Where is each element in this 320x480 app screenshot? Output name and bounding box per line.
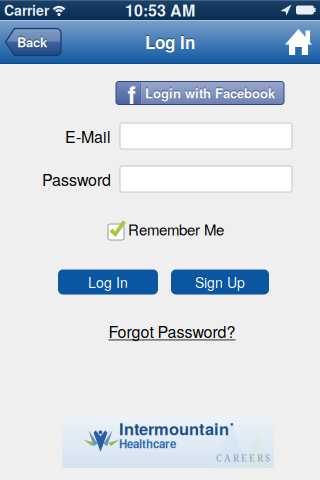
staticText: Back [17,33,47,51]
staticText: Carrier [4,0,49,20]
button[interactable]: Intermountain˙ [62,414,274,468]
button[interactable]: Remember Me [105,218,229,240]
button[interactable]: f [116,81,284,104]
staticText: CAREERS [216,452,270,464]
staticText: Intermountain˙ [119,417,234,440]
staticText: E-Mail [65,124,111,147]
staticText: Login with Facebook [145,84,275,102]
button[interactable] [284,28,312,56]
button[interactable]: Back [5,28,62,56]
button[interactable]: Forgot Password? [108,319,235,342]
button[interactable]: Sign Up [171,269,269,294]
staticText: Log In [145,30,195,54]
staticText: Remember Me [128,218,224,240]
staticText: Healthcare [119,435,176,452]
staticText: 10:53 AM [125,0,195,21]
staticText: Log In [88,272,128,292]
button[interactable]: Log In [58,269,158,294]
button[interactable] [120,166,292,192]
staticText: Forgot Password? [108,319,235,342]
staticText: f [127,76,135,112]
staticText: Password [42,167,111,190]
button[interactable] [120,123,292,149]
staticText: Sign Up [195,272,245,292]
